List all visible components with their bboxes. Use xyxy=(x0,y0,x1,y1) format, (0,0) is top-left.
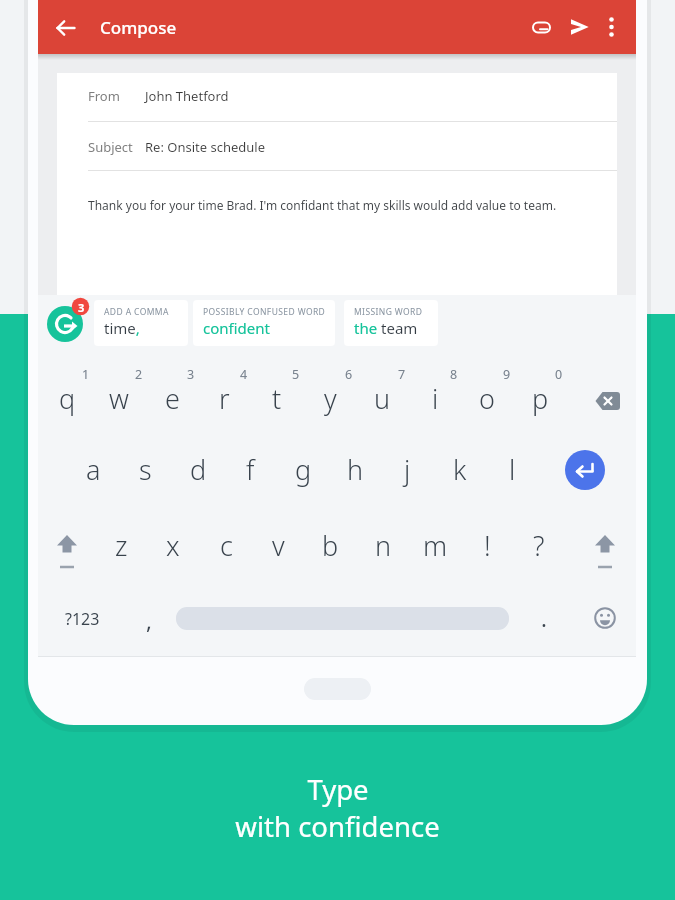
button[interactable]: v xyxy=(252,521,304,569)
button[interactable]: ? xyxy=(513,521,565,569)
button[interactable]: z xyxy=(95,521,147,569)
staticText: v xyxy=(272,527,285,564)
staticText: i xyxy=(432,380,439,417)
button[interactable] xyxy=(529,15,553,39)
button[interactable]: h xyxy=(329,445,381,493)
staticText: m xyxy=(423,527,448,564)
button[interactable]: p xyxy=(514,374,566,422)
button[interactable] xyxy=(304,678,371,700)
staticText: x xyxy=(166,527,180,564)
button[interactable]: u xyxy=(356,374,408,422)
staticText: Thank you for your time Brad. I'm confid… xyxy=(88,197,557,213)
button[interactable] xyxy=(43,294,93,348)
staticText: From xyxy=(88,87,120,105)
staticText: y xyxy=(324,380,337,417)
button[interactable]: e xyxy=(146,374,198,422)
button[interactable]: l xyxy=(486,445,538,493)
staticText: time, xyxy=(104,318,140,338)
staticText: 3 xyxy=(187,366,195,383)
staticText: the team xyxy=(354,318,418,338)
staticText: k xyxy=(453,451,467,488)
staticText: John Thetford xyxy=(145,87,229,105)
staticText: p xyxy=(532,380,549,417)
button[interactable]: j xyxy=(381,445,433,493)
button[interactable] xyxy=(38,0,636,54)
staticText: ! xyxy=(484,527,491,564)
staticText: ?123 xyxy=(65,608,100,630)
button[interactable]: ?123 xyxy=(0,0,70,30)
staticText: d xyxy=(190,451,207,488)
staticText: b xyxy=(322,527,339,564)
button[interactable] xyxy=(49,528,85,572)
staticText: e xyxy=(165,380,180,417)
staticText: ADD A COMMA xyxy=(104,306,169,318)
staticText: u xyxy=(374,380,391,417)
staticText: s xyxy=(139,451,152,488)
button[interactable] xyxy=(588,387,624,415)
staticText: 2 xyxy=(135,366,143,383)
staticText: Subject xyxy=(88,138,133,156)
staticText: h xyxy=(347,451,364,488)
button[interactable] xyxy=(590,603,620,633)
staticText: 4 xyxy=(240,366,248,383)
staticText: z xyxy=(115,527,128,564)
button[interactable]: c xyxy=(200,521,252,569)
button[interactable]: n xyxy=(357,521,409,569)
staticText: Re: Onsite schedule xyxy=(145,138,266,156)
button[interactable]: g xyxy=(277,445,329,493)
button[interactable] xyxy=(599,15,623,39)
button[interactable] xyxy=(54,16,78,40)
staticText: , xyxy=(146,605,152,635)
staticText: f xyxy=(246,451,255,488)
staticText: 5 xyxy=(292,366,300,383)
staticText: g xyxy=(295,451,312,488)
button[interactable]: MISSING WORD xyxy=(344,300,438,346)
staticText: a xyxy=(86,451,101,488)
button[interactable]: m xyxy=(409,521,461,569)
staticText: q xyxy=(59,380,76,417)
staticText: t xyxy=(272,380,282,417)
button[interactable]: f xyxy=(224,445,276,493)
staticText: Type xyxy=(307,771,369,808)
staticText: 3 xyxy=(78,300,85,315)
staticText: 0 xyxy=(555,366,563,383)
staticText: 7 xyxy=(398,366,406,383)
button[interactable]: r xyxy=(198,374,250,422)
button[interactable]: o xyxy=(461,374,513,422)
button[interactable]: d xyxy=(172,445,224,493)
staticText: with confidence xyxy=(235,808,440,845)
staticText: l xyxy=(509,451,516,488)
button[interactable] xyxy=(566,15,590,39)
button[interactable]: k xyxy=(434,445,486,493)
button[interactable]: a xyxy=(67,445,119,493)
button[interactable]: ADD A COMMA xyxy=(94,300,188,346)
button[interactable]: y xyxy=(304,374,356,422)
staticText: ? xyxy=(533,527,545,564)
button[interactable]: POSSIBLY CONFUSED WORD xyxy=(193,300,335,346)
staticText: j xyxy=(404,451,411,488)
button[interactable]: . xyxy=(0,0,30,40)
button[interactable]: x xyxy=(147,521,199,569)
staticText: 9 xyxy=(503,366,511,383)
staticText: . xyxy=(541,603,547,633)
button[interactable]: ! xyxy=(461,521,513,569)
staticText: o xyxy=(479,380,495,417)
staticText: MISSING WORD xyxy=(354,306,423,318)
button[interactable] xyxy=(587,528,623,572)
staticText: 8 xyxy=(450,366,458,383)
button[interactable]: q xyxy=(41,374,93,422)
button[interactable]: b xyxy=(304,521,356,569)
button[interactable]: s xyxy=(119,445,171,493)
staticText: POSSIBLY CONFUSED WORD xyxy=(203,306,326,318)
button[interactable]: w xyxy=(93,374,145,422)
button[interactable]: i xyxy=(409,374,461,422)
staticText: c xyxy=(220,527,233,564)
staticText: 1 xyxy=(82,366,90,383)
button[interactable]: t xyxy=(251,374,303,422)
staticText: Compose xyxy=(100,16,177,39)
button[interactable] xyxy=(565,450,605,490)
staticText: n xyxy=(375,527,392,564)
button[interactable]: , xyxy=(0,0,30,40)
staticText: 6 xyxy=(345,366,353,383)
